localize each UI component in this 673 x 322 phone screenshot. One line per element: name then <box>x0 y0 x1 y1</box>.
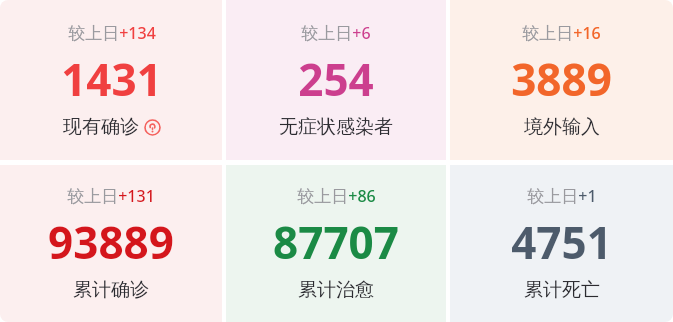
other: 说明 <box>144 119 161 136</box>
staticText: 无症状感染者 <box>279 115 393 139</box>
staticText: 较上日+134 <box>68 22 156 44</box>
staticText: 较上日+1 <box>527 185 597 207</box>
button[interactable]: 较上日+1 <box>450 165 673 322</box>
button[interactable]: 较上日+131 <box>0 165 222 322</box>
staticText: 3889 <box>511 49 612 109</box>
staticText: 较上日+131 <box>67 185 155 207</box>
button[interactable]: 较上日+6 <box>226 0 446 160</box>
staticText: 累计确诊 <box>73 278 149 302</box>
staticText: 4751 <box>511 212 612 272</box>
staticText: 累计治愈 <box>298 278 374 302</box>
staticText: 较上日+6 <box>301 22 371 44</box>
staticText: 累计死亡 <box>524 278 600 302</box>
staticText: 254 <box>298 49 374 109</box>
button[interactable]: 较上日+134 <box>0 0 222 160</box>
staticText: 现有确诊 <box>63 115 139 139</box>
button[interactable]: 较上日+86 <box>226 165 446 322</box>
staticText: 87707 <box>273 212 399 272</box>
staticText: 较上日+16 <box>522 22 601 44</box>
staticText: 1431 <box>61 49 162 109</box>
staticText: 境外输入 <box>524 115 600 139</box>
button[interactable]: 较上日+16 <box>450 0 673 160</box>
staticText: 较上日+86 <box>297 185 376 207</box>
staticText: 93889 <box>48 212 174 272</box>
